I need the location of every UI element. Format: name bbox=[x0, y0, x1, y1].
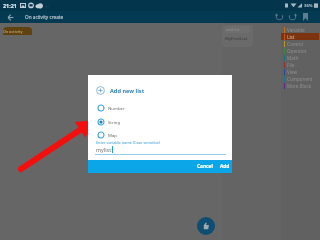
button[interactable]: Component bbox=[281, 75, 319, 82]
staticText: MyFirstList bbox=[224, 36, 248, 41]
button[interactable]: Control bbox=[281, 40, 319, 47]
staticText: List bbox=[287, 34, 295, 40]
staticText: add list bbox=[224, 27, 240, 32]
staticText: 36% bbox=[304, 3, 313, 9]
button[interactable]: Back bbox=[0, 11, 20, 23]
staticText: Component bbox=[287, 76, 313, 82]
button[interactable]: Operator bbox=[281, 47, 319, 54]
staticText: On activity create bbox=[25, 14, 64, 20]
staticText: 21:21 bbox=[3, 2, 17, 9]
staticText: Control bbox=[287, 41, 303, 47]
button[interactable]: Add bbox=[220, 160, 230, 173]
button[interactable]: More Block bbox=[281, 82, 319, 89]
button[interactable]: add list bbox=[224, 26, 250, 33]
button[interactable]: Number bbox=[97, 104, 232, 112]
staticText: Cancel bbox=[197, 163, 213, 170]
staticText: mylist bbox=[96, 146, 112, 153]
button[interactable]: Undo bbox=[273, 11, 286, 23]
staticText: Operator bbox=[287, 48, 307, 54]
button[interactable]: View bbox=[281, 68, 319, 75]
staticText: String bbox=[108, 119, 121, 125]
button[interactable]: List bbox=[281, 33, 319, 40]
staticText: Variable bbox=[287, 27, 305, 33]
button[interactable]: On activity create bbox=[3, 27, 32, 35]
staticText: Add new list bbox=[110, 87, 145, 95]
button[interactable]: String bbox=[97, 118, 232, 126]
staticText: More Block bbox=[287, 83, 312, 89]
staticText: Math bbox=[287, 55, 299, 61]
button[interactable]: Cancel bbox=[197, 160, 213, 173]
button[interactable]: File bbox=[281, 61, 319, 68]
staticText: On activity create bbox=[3, 29, 32, 34]
button[interactable]: Math bbox=[281, 54, 319, 61]
staticText: Enter variable name (Case sensitive) bbox=[96, 140, 161, 145]
button[interactable]: Variable bbox=[281, 26, 319, 33]
button[interactable]: Redo bbox=[286, 11, 299, 23]
button[interactable]: Save bbox=[299, 11, 312, 23]
staticText: ··· bbox=[45, 3, 49, 9]
button[interactable]: MyFirstList bbox=[224, 35, 250, 42]
staticText: Map bbox=[108, 132, 117, 138]
staticText: Number bbox=[108, 105, 125, 111]
staticText: View bbox=[287, 69, 298, 75]
staticText: Add bbox=[220, 163, 230, 170]
button[interactable]: Run app bbox=[197, 217, 215, 235]
staticText: File bbox=[287, 62, 295, 68]
button[interactable]: Map bbox=[97, 131, 232, 139]
